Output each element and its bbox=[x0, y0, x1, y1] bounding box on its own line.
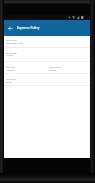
button[interactable]: Policy Name bbox=[4, 36, 90, 47]
staticText: 100.00 bbox=[49, 69, 57, 72]
staticText: 50.00 bbox=[6, 81, 12, 84]
staticText: 1000.00 bbox=[6, 69, 15, 72]
staticText: 100.00 bbox=[6, 54, 14, 57]
staticText: Expense Policy bbox=[17, 26, 40, 30]
button[interactable]: Daily Limit bbox=[4, 62, 47, 73]
button[interactable]: Yearly Limit bbox=[4, 74, 47, 85]
button[interactable]: Monthly Limit bbox=[47, 62, 90, 73]
staticText: Employee - Gen bbox=[6, 42, 23, 45]
staticText: Daily Limit bbox=[6, 66, 15, 68]
staticText: Receipt Over bbox=[6, 52, 17, 54]
staticText: Monthly Limit bbox=[49, 66, 61, 68]
staticText: Yearly Limit bbox=[6, 78, 16, 80]
button[interactable]: Back bbox=[4, 20, 17, 36]
staticText: Policy Name bbox=[6, 39, 17, 41]
button[interactable]: Receipt Over bbox=[4, 48, 90, 61]
